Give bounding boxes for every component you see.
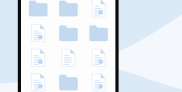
button[interactable]: File [86, 22, 112, 44]
button[interactable]: File [55, 0, 81, 19]
button[interactable]: File [55, 71, 81, 92]
button[interactable]: File [86, 47, 112, 69]
button[interactable]: File [55, 22, 81, 44]
button[interactable]: File [25, 47, 51, 69]
button[interactable]: File [25, 0, 51, 19]
button[interactable]: File [25, 71, 51, 92]
button[interactable]: File [86, 0, 112, 19]
button[interactable]: File [55, 47, 81, 69]
button[interactable]: File [86, 71, 112, 92]
button[interactable]: File [25, 22, 51, 44]
